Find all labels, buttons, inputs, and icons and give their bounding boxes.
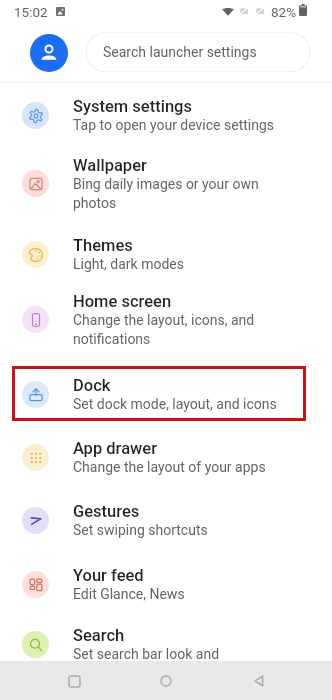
button[interactable]: Back xyxy=(240,662,278,700)
staticText: Themes xyxy=(73,236,133,255)
button[interactable]: Home screen xyxy=(0,279,332,360)
staticText: App drawer xyxy=(73,439,158,458)
button[interactable]: Dock xyxy=(0,363,332,425)
staticText: Your feed xyxy=(73,566,144,585)
button[interactable]: Search launcher settings xyxy=(86,32,310,72)
button[interactable]: Gestures xyxy=(0,489,332,551)
staticText: Bing daily images or your own photos xyxy=(73,176,278,211)
staticText: 15:02 xyxy=(14,4,48,20)
button[interactable]: Account xyxy=(30,34,68,72)
staticText: Gestures xyxy=(73,502,140,521)
staticText: Edit Glance, News xyxy=(73,586,185,602)
staticText: Tap to open your device settings xyxy=(73,117,275,133)
staticText: Search launcher settings xyxy=(103,44,257,60)
staticText: Set dock mode, layout, and icons xyxy=(73,396,277,412)
button[interactable]: Search xyxy=(0,613,332,675)
button[interactable]: System settings xyxy=(0,84,332,146)
staticText: Wallpaper xyxy=(73,156,147,175)
staticText: System settings xyxy=(73,97,192,116)
button[interactable]: Wallpaper xyxy=(0,143,332,224)
staticText: Set search bar look and xyxy=(73,646,220,662)
button[interactable]: Your feed xyxy=(0,553,332,615)
button[interactable]: Home xyxy=(147,662,185,700)
staticText: Search xyxy=(73,626,125,645)
staticText: Dock xyxy=(73,376,111,395)
staticText: 82% xyxy=(271,4,297,20)
staticText: Change the layout, icons, and notificati… xyxy=(73,312,278,347)
button[interactable]: App drawer xyxy=(0,426,332,488)
staticText: Set swiping shortcuts xyxy=(73,522,208,538)
staticText: Light, dark modes xyxy=(73,256,184,272)
button[interactable]: Recents xyxy=(55,662,93,700)
staticText: Home screen xyxy=(73,292,172,311)
staticText: Change the layout of your apps xyxy=(73,459,266,475)
button[interactable]: Themes xyxy=(0,223,332,285)
